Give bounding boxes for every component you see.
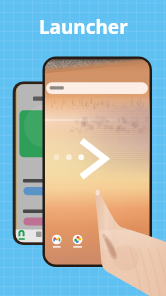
staticText: Launcher bbox=[39, 14, 128, 40]
